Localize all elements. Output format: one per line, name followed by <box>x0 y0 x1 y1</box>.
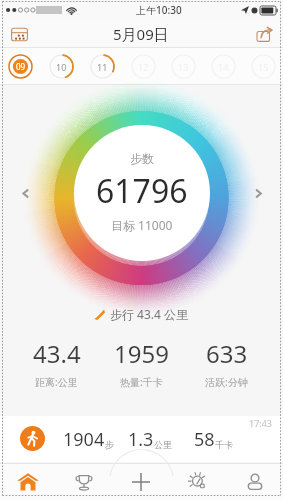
staticText: 1904 <box>63 427 105 452</box>
button[interactable]: 11 <box>82 48 123 85</box>
staticText: 步行 43.4 公里 <box>110 306 189 322</box>
button[interactable]: 1904 <box>0 416 283 462</box>
staticText: 15 <box>258 61 269 73</box>
staticText: 距离:公里 <box>35 375 78 389</box>
button[interactable]: Next day <box>247 182 269 204</box>
staticText: 633 <box>206 337 248 370</box>
staticText: 步 <box>105 439 114 450</box>
button[interactable]: Add <box>112 463 169 500</box>
button[interactable]: 14 <box>203 48 243 85</box>
button[interactable]: 10 <box>41 48 82 85</box>
button[interactable]: Achievements <box>56 463 112 500</box>
button[interactable]: 1959 <box>99 333 184 393</box>
button[interactable]: 12 <box>123 48 163 85</box>
staticText: 10 <box>56 61 67 73</box>
staticText: 61796 <box>96 169 188 213</box>
staticText: 目标 11000 <box>111 217 173 233</box>
staticText: 1959 <box>114 337 169 370</box>
button[interactable]: 15 <box>243 48 283 85</box>
staticText: 5月09日 <box>113 24 169 44</box>
staticText: 11 <box>97 61 108 73</box>
staticText: 43.4 <box>33 337 81 370</box>
staticText: 14 <box>218 61 229 73</box>
staticText: 1.3 <box>128 427 154 452</box>
staticText: 热量:千卡 <box>120 375 163 389</box>
staticText: 活跃:分钟 <box>205 375 248 389</box>
button[interactable]: 13 <box>163 48 203 85</box>
staticText: 17:43 <box>249 417 273 429</box>
button[interactable]: Share <box>250 20 278 48</box>
button[interactable]: Discover <box>169 463 226 500</box>
staticText: 公里 <box>154 439 172 450</box>
staticText: 千卡 <box>215 439 233 450</box>
button[interactable]: 633 <box>184 333 269 393</box>
staticText: 58 <box>194 427 215 452</box>
button[interactable]: Profile <box>226 463 283 500</box>
button[interactable]: Calendar <box>5 20 33 48</box>
staticText: 12 <box>138 61 149 73</box>
button[interactable]: 43.4 <box>14 333 99 393</box>
button[interactable]: Previous day <box>14 182 36 204</box>
button[interactable]: Home <box>0 463 56 500</box>
staticText: 13 <box>178 61 189 73</box>
staticText: 上午10:30 <box>136 3 182 17</box>
staticText: 步数 <box>130 151 154 166</box>
staticText: 09 <box>16 61 26 72</box>
button[interactable]: 09 <box>0 48 41 85</box>
